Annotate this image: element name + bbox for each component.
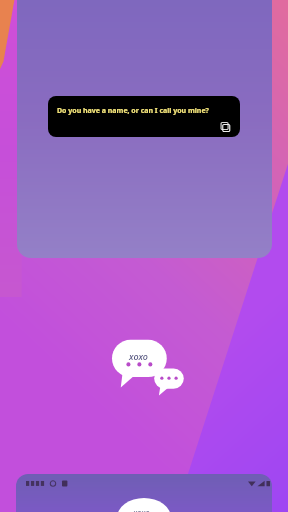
staticText: xoxo bbox=[133, 507, 150, 512]
button[interactable]: Chat bubbles bbox=[112, 338, 186, 400]
button[interactable] bbox=[17, 0, 272, 258]
staticText: xoxo bbox=[129, 350, 148, 362]
staticText: Do you have a name, or can I call you mi… bbox=[57, 106, 209, 116]
button[interactable]: Copy bbox=[218, 120, 232, 134]
button[interactable]: xoxo bbox=[16, 474, 272, 512]
button[interactable]: Do you have a name, or can I call you mi… bbox=[48, 96, 240, 137]
